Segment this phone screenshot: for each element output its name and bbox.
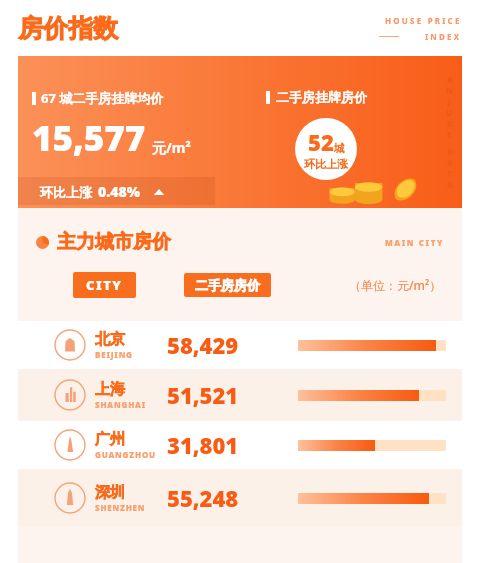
staticText: 二手房房价 bbox=[195, 277, 260, 293]
staticText: 深圳 bbox=[95, 483, 125, 502]
staticText: 主力城市房价 bbox=[57, 230, 171, 254]
other: 广州 bbox=[54, 429, 86, 461]
staticText: SHANGHAI bbox=[95, 399, 146, 410]
staticText: 二手房挂牌房价 bbox=[276, 89, 367, 105]
staticText: 广州 bbox=[95, 430, 125, 449]
staticText: T bbox=[447, 168, 452, 179]
button[interactable]: 二手房房价 bbox=[184, 273, 271, 297]
staticText: 67 城二手房挂牌均价 bbox=[41, 89, 164, 107]
staticText: J bbox=[448, 96, 451, 107]
staticText: A bbox=[447, 74, 453, 85]
staticText: 31,801 bbox=[167, 430, 239, 460]
staticText: E bbox=[447, 129, 452, 140]
staticText: 51,521 bbox=[167, 380, 239, 410]
staticText: 元/m² bbox=[152, 138, 191, 157]
button[interactable]: 广州 bbox=[18, 421, 462, 469]
button[interactable]: CITY bbox=[73, 272, 136, 298]
staticText: GUANGZHOU bbox=[95, 449, 156, 460]
staticText: SHENZHEN bbox=[95, 502, 146, 513]
staticText: INDEX bbox=[425, 31, 462, 42]
staticText: CITY bbox=[86, 276, 123, 294]
staticText: 58,429 bbox=[167, 330, 239, 360]
button[interactable]: 深圳 bbox=[18, 469, 462, 527]
staticText: U bbox=[446, 107, 453, 118]
staticText: 北京 bbox=[95, 330, 125, 349]
staticText: HOUSE PRICE bbox=[385, 15, 462, 26]
staticText: （单位：元/m²） bbox=[349, 277, 442, 293]
staticText: 城 bbox=[334, 141, 345, 155]
staticText: 52 bbox=[308, 127, 334, 157]
staticText: 55,248 bbox=[167, 483, 239, 513]
staticText: N bbox=[446, 85, 453, 96]
staticText: 环比上涨 bbox=[40, 184, 92, 200]
button[interactable]: 上海 bbox=[18, 369, 462, 421]
other: 北京 bbox=[54, 329, 86, 361]
staticText: A bbox=[447, 157, 453, 168]
staticText: 房价指数 bbox=[18, 13, 118, 44]
staticText: MAIN CITY bbox=[385, 237, 444, 248]
other: 深圳 bbox=[54, 482, 86, 514]
staticText: 上海 bbox=[95, 380, 125, 399]
staticText: 0.48% bbox=[98, 182, 140, 201]
staticText: BEIJING bbox=[95, 349, 133, 360]
button[interactable]: 北京 bbox=[18, 321, 462, 369]
staticText: D bbox=[447, 146, 453, 157]
other: 上海 bbox=[54, 379, 86, 411]
staticText: A bbox=[447, 179, 453, 190]
staticText: 15,577 bbox=[32, 114, 146, 162]
staticText: K bbox=[447, 118, 453, 129]
staticText: 环比上涨 bbox=[304, 157, 348, 171]
